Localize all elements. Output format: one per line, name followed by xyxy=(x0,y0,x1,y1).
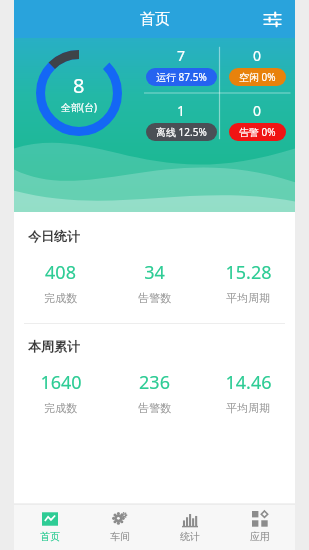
staticText: 首页 xyxy=(140,10,170,29)
staticText: 平均周期 xyxy=(226,401,270,415)
staticText: 34 xyxy=(144,260,165,285)
staticText: 告警数 xyxy=(138,291,171,305)
staticText: 1640 xyxy=(40,370,82,395)
button[interactable]: 408 xyxy=(14,260,107,305)
staticText: 应用 xyxy=(250,530,270,543)
staticText: 首页 xyxy=(40,530,60,543)
staticText: 本周累计 xyxy=(28,338,80,354)
button[interactable]: 34 xyxy=(107,260,201,305)
staticText: 告警数 xyxy=(138,401,171,415)
staticText: 全部(台) xyxy=(61,100,97,114)
button[interactable]: 0 xyxy=(219,38,295,93)
button[interactable]: 14.46 xyxy=(201,370,295,415)
staticText: 车间 xyxy=(110,530,130,543)
staticText: 408 xyxy=(45,260,76,285)
button[interactable]: 应用 xyxy=(225,504,295,550)
staticText: 统计 xyxy=(180,530,200,543)
button[interactable]: 统计 xyxy=(155,504,225,550)
button[interactable]: 1 xyxy=(144,93,219,148)
button[interactable]: 首页 xyxy=(14,504,85,550)
staticText: 运行 87.5% xyxy=(156,70,207,84)
staticText: 8 xyxy=(73,72,85,99)
staticText: 完成数 xyxy=(44,401,77,415)
staticText: 平均周期 xyxy=(226,291,270,305)
staticText: 0 xyxy=(253,46,262,65)
button[interactable]: 236 xyxy=(107,370,201,415)
staticText: 空闲 0% xyxy=(239,70,276,84)
staticText: 今日统计 xyxy=(28,228,80,244)
staticText: 236 xyxy=(139,370,170,395)
staticText: 7 xyxy=(177,46,186,65)
staticText: 离线 12.5% xyxy=(156,125,207,139)
staticText: 完成数 xyxy=(44,291,77,305)
button[interactable]: 15.28 xyxy=(201,260,295,305)
button[interactable]: 车间 xyxy=(85,504,155,550)
staticText: 15.28 xyxy=(225,260,272,285)
staticText: 0 xyxy=(253,101,262,120)
button[interactable]: Settings xyxy=(257,4,287,34)
button[interactable]: 1640 xyxy=(14,370,107,415)
button[interactable]: 0 xyxy=(219,93,295,148)
staticText: 14.46 xyxy=(225,370,272,395)
button[interactable]: 7 xyxy=(144,38,219,93)
staticText: 告警 0% xyxy=(239,125,276,139)
staticText: 1 xyxy=(177,101,186,120)
